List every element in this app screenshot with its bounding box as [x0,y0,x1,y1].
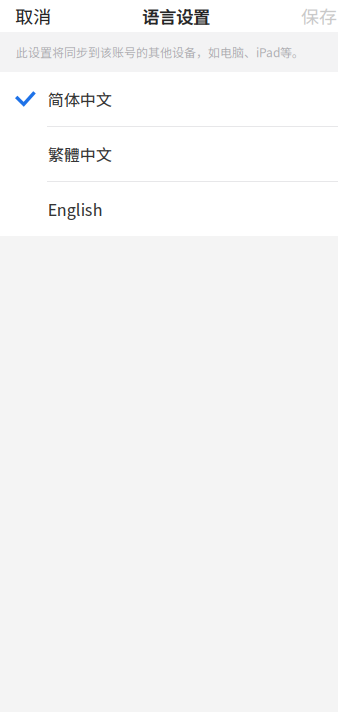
staticText: 取消 [15,3,51,29]
button[interactable]: English [0,182,338,236]
staticText: 简体中文 [48,87,112,111]
button[interactable]: 保存 [289,0,338,32]
staticText: 繁體中文 [48,142,112,166]
staticText: 此设置将同步到该账号的其他设备，如电脑、iPad等。 [16,43,304,61]
button[interactable]: 繁體中文 [0,127,338,181]
staticText: 语言设置 [142,3,210,29]
button[interactable]: 简体中文 [0,72,338,126]
staticText: English [48,197,103,221]
staticText: 保存 [301,3,337,29]
button[interactable]: 取消 [0,0,63,32]
